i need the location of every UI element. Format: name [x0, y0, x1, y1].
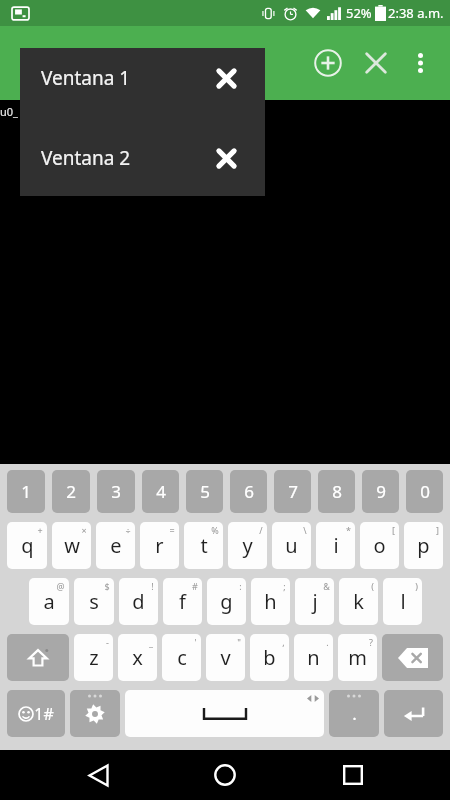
staticText: 0 — [420, 480, 430, 503]
button[interactable]: Ajustes — [70, 690, 120, 737]
button[interactable]: Atrás — [68, 750, 128, 800]
staticText: _ — [149, 636, 153, 648]
staticText: a — [43, 588, 55, 615]
button[interactable]: k — [339, 578, 378, 625]
staticText: + — [37, 524, 43, 536]
staticText: * — [346, 524, 351, 536]
button[interactable]: e — [96, 522, 135, 569]
button[interactable]: Ventana 1 — [20, 48, 265, 108]
button[interactable]: n — [294, 634, 333, 681]
staticText: × — [81, 524, 87, 536]
button[interactable]: Borrar — [382, 634, 443, 681]
staticText: 6 — [244, 480, 254, 503]
staticText: / — [259, 524, 263, 536]
staticText: b — [263, 644, 276, 671]
button[interactable]: c — [162, 634, 201, 681]
staticText: t — [200, 532, 208, 559]
button[interactable]: Ventana 2 — [20, 128, 265, 188]
button[interactable]: m — [338, 634, 377, 681]
staticText: - — [106, 636, 109, 648]
button[interactable]: Más opciones — [400, 43, 440, 83]
staticText: ? — [369, 636, 373, 648]
staticText: y — [242, 532, 253, 559]
staticText: ; — [283, 580, 286, 592]
button[interactable]: 9 — [362, 470, 399, 513]
button[interactable]: d — [119, 578, 158, 625]
button[interactable]: . — [329, 690, 379, 737]
button[interactable]: f — [163, 578, 202, 625]
staticText: d — [132, 588, 145, 615]
staticText: , — [282, 636, 285, 648]
staticText: 7 — [288, 480, 298, 503]
button[interactable]: 8 — [318, 470, 355, 513]
staticText: [ — [392, 524, 395, 536]
staticText: v — [220, 644, 231, 671]
button[interactable]: u — [272, 522, 311, 569]
button[interactable]: l — [383, 578, 422, 625]
button[interactable]: 1 — [7, 470, 45, 513]
button[interactable]: 7 — [274, 470, 311, 513]
button[interactable]: 5 — [186, 470, 223, 513]
button[interactable]: b — [250, 634, 289, 681]
button[interactable]: w — [52, 522, 91, 569]
staticText: $ — [104, 580, 110, 592]
button[interactable]: o — [360, 522, 399, 569]
staticText: 3 — [111, 480, 121, 503]
staticText: 52% — [346, 4, 372, 22]
button[interactable]: q — [7, 522, 47, 569]
button[interactable]: g — [207, 578, 246, 625]
staticText: n — [307, 644, 320, 671]
staticText: c — [177, 644, 187, 671]
staticText: & — [323, 580, 330, 592]
staticText: 4 — [156, 480, 166, 503]
button[interactable]: s — [74, 578, 114, 625]
staticText: @ — [56, 580, 65, 592]
button[interactable]: Cerrar Ventana 1 — [187, 48, 265, 108]
button[interactable]: x — [118, 634, 157, 681]
button[interactable]: Nueva ventana — [304, 39, 352, 87]
button[interactable]: i — [316, 522, 355, 569]
button[interactable]: y — [228, 522, 267, 569]
button[interactable]: Cerrar Ventana 2 — [187, 128, 265, 188]
staticText: m — [348, 644, 367, 671]
staticText: 2 — [66, 480, 76, 503]
button[interactable]: t — [184, 522, 223, 569]
staticText: % — [211, 524, 219, 536]
button[interactable]: Espacio — [125, 690, 324, 737]
button[interactable]: 2 — [52, 470, 90, 513]
staticText: u — [285, 532, 298, 559]
button[interactable]: 6 — [230, 470, 267, 513]
staticText: 9 — [376, 480, 386, 503]
button[interactable]: p — [404, 522, 443, 569]
staticText: 1# — [34, 703, 54, 725]
button[interactable]: v — [206, 634, 245, 681]
button[interactable]: j — [295, 578, 334, 625]
button[interactable]: Inicio — [195, 750, 255, 800]
button[interactable]: 0 — [406, 470, 443, 513]
button[interactable]: Intro — [384, 690, 443, 737]
staticText: Ventana 2 — [41, 145, 131, 171]
staticText: j — [312, 588, 318, 615]
staticText: s — [89, 588, 99, 615]
staticText: x — [132, 644, 143, 671]
staticText: 8 — [332, 480, 342, 503]
button[interactable]: 3 — [97, 470, 135, 513]
button[interactable]: 4 — [142, 470, 179, 513]
staticText: ] — [436, 524, 439, 536]
staticText: 5 — [200, 480, 210, 503]
button[interactable]: h — [251, 578, 290, 625]
staticText: h — [264, 588, 277, 615]
button[interactable]: Cerrar ventana — [352, 39, 400, 87]
button[interactable]: Mayúsculas — [7, 634, 69, 681]
button[interactable]: Símbolos — [7, 690, 65, 737]
staticText: " — [237, 636, 241, 648]
staticText: u0_ — [0, 104, 18, 119]
button[interactable]: a — [29, 578, 69, 625]
staticText: l — [400, 588, 406, 615]
staticText: g — [220, 588, 233, 615]
button[interactable]: z — [74, 634, 113, 681]
staticText: q — [21, 532, 34, 559]
button[interactable]: r — [140, 522, 179, 569]
button[interactable]: Recientes — [323, 750, 383, 800]
staticText: ÷ — [125, 524, 131, 536]
